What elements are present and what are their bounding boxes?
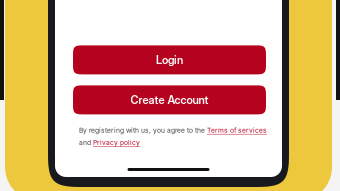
staticText: By registering with us, you agree to the	[79, 126, 207, 134]
button[interactable]: Terms of services	[207, 126, 267, 134]
staticText: Privacy policy	[93, 138, 140, 146]
button[interactable]: Login	[73, 45, 266, 74]
button[interactable]: Create Account	[73, 85, 266, 114]
staticText: and	[79, 138, 93, 146]
staticText: Login	[156, 53, 183, 67]
staticText: Terms of services	[207, 126, 267, 134]
staticText: Create Account	[130, 93, 208, 107]
button[interactable]: Privacy policy	[93, 138, 140, 146]
